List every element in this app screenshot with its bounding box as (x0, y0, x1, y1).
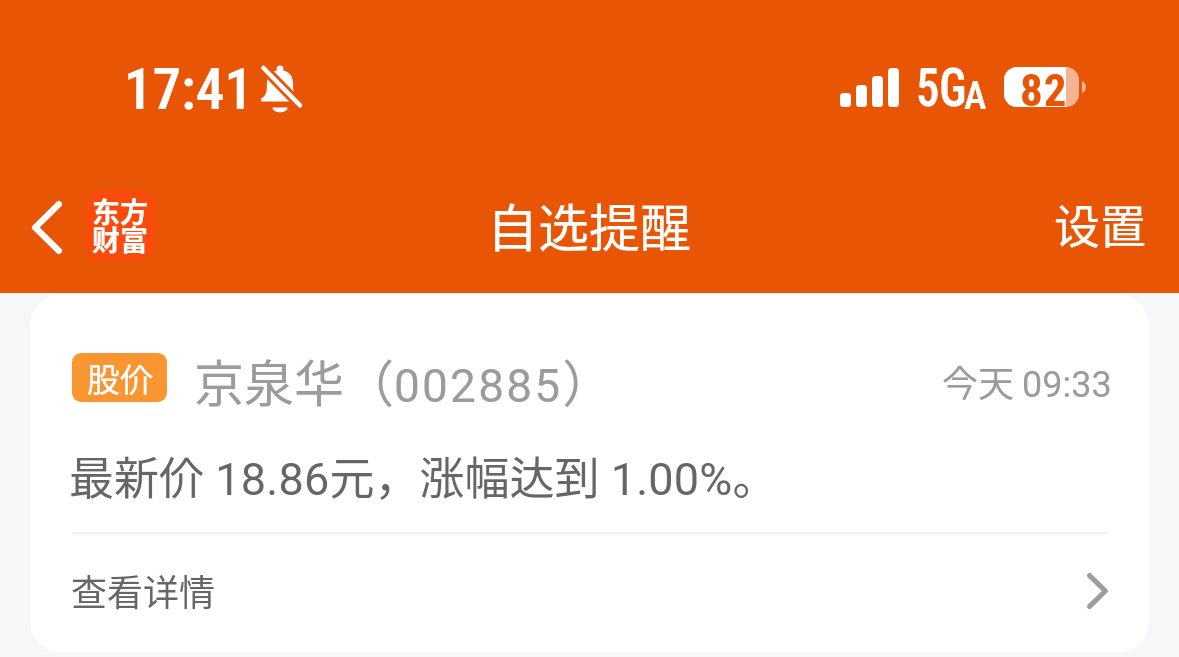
button[interactable]: 股价 (30, 295, 1149, 652)
staticText: 5G (916, 57, 967, 119)
staticText: 今天 09:33 (942, 355, 1112, 407)
staticText: 京泉华（002885） (194, 344, 613, 416)
staticText: A (964, 74, 987, 119)
button[interactable]: Back (9, 180, 85, 274)
staticText: 财富 (92, 219, 149, 260)
staticText: 17:41 (124, 56, 253, 123)
other: Cellular signal (840, 67, 899, 107)
staticText: 自选提醒 (487, 188, 692, 262)
staticText: 82 (1020, 64, 1068, 117)
button[interactable]: 设置 (1039, 177, 1161, 269)
other: Notifications silenced (257, 64, 303, 111)
button[interactable]: 查看详情 (30, 532, 1149, 650)
staticText: 最新价 18.86元，涨幅达到 1.00%。 (69, 443, 778, 508)
other: Battery 82 percent (1004, 67, 1090, 120)
staticText: 股价 (87, 354, 153, 402)
staticText: 设置 (1054, 190, 1146, 257)
other: View details (1087, 573, 1108, 609)
button[interactable]: East Money logo (85, 190, 155, 260)
staticText: 查看详情 (71, 564, 216, 616)
staticText: 东方 (92, 191, 149, 232)
